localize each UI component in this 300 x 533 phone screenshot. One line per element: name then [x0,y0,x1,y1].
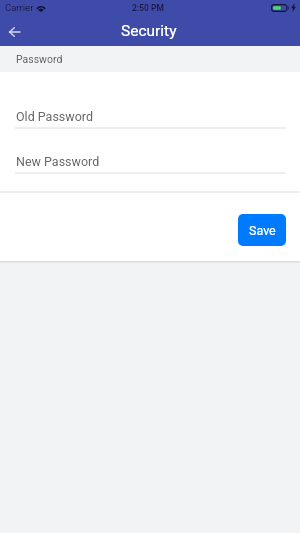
button[interactable]: Old Password [0,108,300,128]
button[interactable]: Save [238,214,286,246]
staticText: 2:50 PM [132,3,164,13]
staticText: New Password [16,154,100,169]
staticText: Old Password [16,109,94,124]
staticText: Password [16,53,63,65]
staticText: Carrier [5,2,34,13]
button[interactable]: Back [2,20,26,44]
staticText: Security [121,22,177,40]
staticText: Save [249,223,276,238]
button[interactable]: New Password [0,153,300,173]
